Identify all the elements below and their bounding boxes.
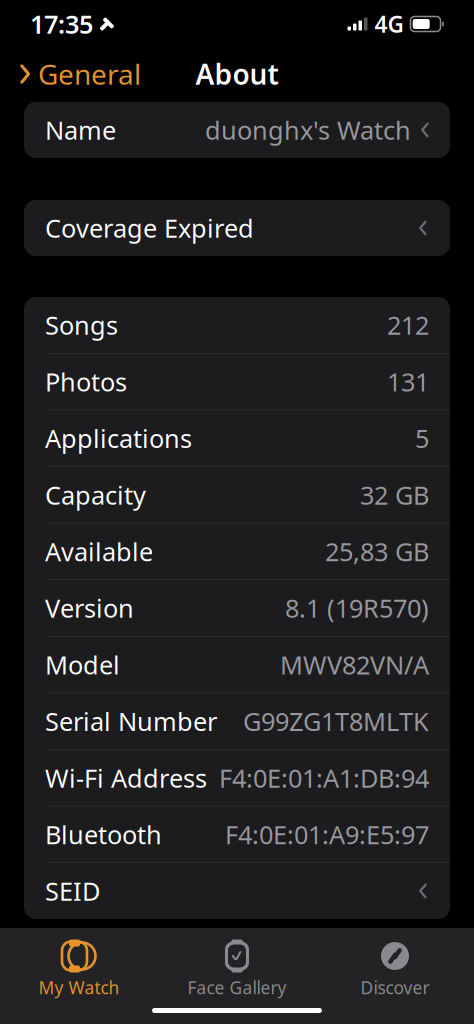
button[interactable]: Wi-Fi Address: [24, 750, 450, 806]
staticText: 25,83 GB: [325, 535, 429, 568]
button[interactable]: Songs: [24, 297, 450, 353]
staticText: F4:0E:01:A9:E5:97: [225, 818, 429, 851]
staticText: Serial Number: [45, 704, 217, 738]
button[interactable]: Model: [24, 637, 450, 693]
staticText: 17:35: [30, 7, 93, 41]
staticText: Name: [45, 113, 116, 147]
button[interactable]: Photos: [24, 354, 450, 410]
staticText: General: [38, 55, 141, 93]
staticText: 32 GB: [360, 478, 429, 512]
button[interactable]: Face Gallery: [158, 932, 316, 1003]
staticText: Face Gallery: [187, 976, 286, 999]
staticText: duonghx's Watch: [205, 113, 411, 147]
staticText: Bluetooth: [45, 818, 162, 851]
staticText: 212: [387, 308, 429, 342]
staticText: Version: [45, 591, 134, 625]
button[interactable]: Name: [24, 102, 450, 158]
staticText: 131: [387, 365, 429, 398]
staticText: G99ZG1T8MLTK: [243, 704, 429, 738]
staticText: MWV82VN/A: [280, 648, 429, 681]
button[interactable]: Serial Number: [24, 693, 450, 749]
staticText: 4G: [374, 9, 403, 39]
button[interactable]: Applications: [24, 410, 450, 466]
button[interactable]: General: [6, 49, 153, 99]
staticText: About: [195, 55, 278, 93]
button[interactable]: SEID: [24, 863, 450, 919]
staticText: Wi-Fi Address: [45, 761, 207, 795]
staticText: Photos: [45, 365, 127, 398]
button[interactable]: My Watch: [0, 932, 158, 1003]
button[interactable]: Bluetooth: [24, 806, 450, 862]
button[interactable]: Capacity: [24, 467, 450, 523]
button[interactable]: Version: [24, 580, 450, 636]
staticText: 8.1 (19R570): [285, 591, 429, 625]
button[interactable]: Discover: [316, 932, 474, 1003]
button[interactable]: Available: [24, 523, 450, 579]
staticText: Coverage Expired: [45, 211, 254, 245]
staticText: My Watch: [38, 976, 119, 999]
staticText: Model: [45, 648, 120, 681]
staticText: Capacity: [45, 478, 146, 512]
staticText: Applications: [45, 421, 192, 455]
staticText: Songs: [45, 308, 118, 342]
staticText: SEID: [45, 874, 100, 908]
button[interactable]: Coverage Expired: [24, 200, 450, 256]
staticText: Available: [45, 535, 153, 568]
staticText: 5: [415, 421, 429, 455]
staticText: Discover: [360, 976, 429, 999]
staticText: F4:0E:01:A1:DB:94: [219, 761, 429, 795]
